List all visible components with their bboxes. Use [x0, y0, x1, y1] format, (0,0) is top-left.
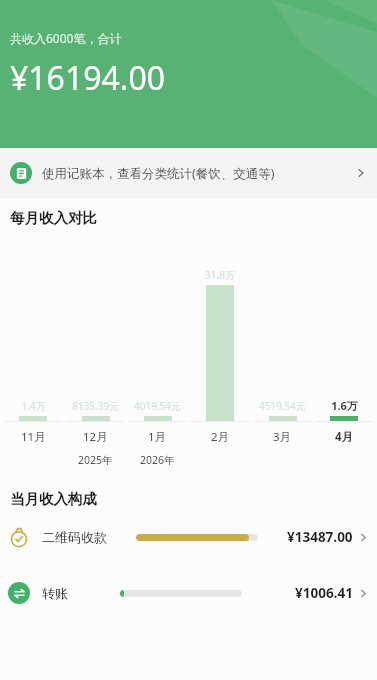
staticText: 31.8万 [205, 268, 235, 282]
staticText: 当月收入构成 [10, 490, 97, 508]
staticText: 2025年 [78, 453, 113, 467]
staticText: 共收入6000笔，合计 [10, 30, 122, 46]
staticText: ¥1006.41 [295, 584, 353, 602]
button[interactable]: 转账 [0, 574, 377, 612]
staticText: 每月收入对比 [10, 209, 97, 227]
other: View details [358, 588, 369, 599]
staticText: 使用记账本，查看分类统计(餐饮、交通等) [42, 165, 275, 182]
staticText: ¥16194.00 [10, 56, 166, 100]
staticText: 1.4万 [21, 399, 46, 413]
staticText: 3月 [273, 429, 292, 445]
button[interactable]: 二维码收款 [0, 518, 377, 556]
staticText: 11月 [21, 429, 46, 445]
staticText: 4019.54元 [134, 399, 181, 413]
staticText: 8135.39元 [72, 399, 119, 413]
other: View details [358, 532, 369, 543]
staticText: 2月 [211, 429, 230, 445]
staticText: 4519.54元 [259, 399, 306, 413]
staticText: 转账 [42, 585, 68, 601]
staticText: 1月 [148, 429, 167, 445]
staticText: 1.6万 [331, 398, 358, 413]
staticText: 二维码收款 [42, 529, 107, 545]
staticText: 12月 [83, 429, 108, 445]
button[interactable]: 使用记账本，查看分类统计(餐饮、交通等) [0, 148, 377, 198]
staticText: ¥13487.00 [287, 528, 353, 546]
staticText: 2026年 [140, 453, 175, 467]
staticText: 4月 [335, 429, 354, 445]
